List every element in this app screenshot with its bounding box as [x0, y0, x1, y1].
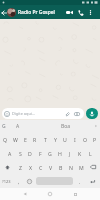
staticText: M — [79, 164, 84, 171]
staticText: F — [39, 150, 42, 157]
button[interactable]: , — [13, 174, 24, 188]
staticText: W — [13, 136, 18, 143]
button[interactable]: V — [46, 160, 56, 174]
button[interactable]: Back — [20, 189, 30, 199]
button[interactable]: X — [26, 160, 36, 174]
button[interactable]: Back — [0, 9, 7, 16]
button[interactable]: N — [66, 160, 76, 174]
staticText: B — [59, 164, 63, 171]
staticText: Q — [3, 136, 8, 143]
button[interactable]: . — [74, 174, 85, 188]
staticText: Digite aqui... — [12, 111, 35, 116]
button[interactable]: Voice message — [86, 108, 98, 119]
button[interactable]: Boa — [54, 120, 78, 132]
staticText: H — [58, 150, 62, 157]
other: Emoji — [4, 111, 10, 117]
staticText: I — [74, 136, 76, 143]
button[interactable]: E — [20, 132, 30, 146]
button[interactable]: L — [85, 146, 95, 160]
button[interactable]: More options — [86, 8, 95, 17]
staticText: O — [83, 136, 88, 143]
button[interactable]: Google — [0, 120, 7, 132]
button[interactable]: Y — [50, 132, 60, 146]
other: Camera — [74, 111, 80, 117]
button[interactable]: Enter — [85, 174, 100, 188]
staticText: S — [19, 150, 22, 157]
staticText: N — [69, 164, 73, 171]
other: Emoji — [27, 179, 32, 184]
staticText: A — [8, 150, 12, 157]
button[interactable]: Video call — [64, 7, 75, 18]
staticText: G — [48, 150, 52, 157]
button[interactable]: G — [45, 146, 55, 160]
other: Enter — [90, 179, 95, 184]
button[interactable]: A — [7, 120, 29, 132]
staticText: P — [93, 136, 97, 143]
staticText: Y — [54, 136, 57, 143]
staticText: K — [78, 150, 82, 157]
button[interactable]: C — [36, 160, 46, 174]
button[interactable]: I — [70, 132, 80, 146]
staticText: T — [44, 136, 47, 143]
staticText: J — [69, 150, 71, 157]
other: Attach — [64, 111, 70, 117]
staticText: ?123 — [2, 179, 11, 184]
staticText: E — [24, 136, 27, 143]
staticText: G — [2, 123, 6, 130]
staticText: C — [39, 164, 43, 171]
staticText: V — [49, 164, 53, 171]
staticText: , — [18, 178, 20, 185]
button[interactable]: W — [10, 132, 20, 146]
button[interactable]: S — [15, 146, 25, 160]
staticText: A — [16, 123, 20, 130]
button[interactable]: P — [90, 132, 100, 146]
staticText: Boa — [61, 123, 71, 130]
button[interactable] — [86, 160, 100, 174]
staticText: Radio Pr Gospel — [18, 9, 55, 16]
button[interactable]: Home — [45, 189, 55, 199]
button[interactable]: B — [56, 160, 66, 174]
button[interactable]: Emoji — [24, 174, 35, 188]
button[interactable]: D — [25, 146, 35, 160]
staticText: R — [33, 136, 37, 143]
button[interactable]: F — [35, 146, 45, 160]
button[interactable]: M — [76, 160, 86, 174]
button[interactable]: Q — [0, 132, 10, 146]
button[interactable]: T — [40, 132, 50, 146]
button[interactable]: O — [80, 132, 90, 146]
staticText: L — [89, 150, 92, 157]
staticText: Z — [19, 164, 22, 171]
staticText: U — [63, 136, 67, 143]
button[interactable]: K — [75, 146, 85, 160]
staticText: . — [79, 178, 81, 185]
button[interactable]: Call — [75, 7, 86, 18]
button[interactable]: Z — [15, 160, 26, 174]
button[interactable]: U — [60, 132, 70, 146]
button[interactable]: H — [55, 146, 65, 160]
button[interactable]: R — [30, 132, 40, 146]
staticText: D — [28, 150, 32, 157]
button[interactable]: More suggestions — [91, 120, 100, 132]
button[interactable]: A — [5, 146, 15, 160]
button[interactable] — [0, 160, 15, 174]
button[interactable]: J — [65, 146, 75, 160]
staticText: X — [29, 164, 33, 171]
button[interactable]: Recent apps — [70, 189, 80, 199]
button[interactable]: Emoji — [2, 108, 84, 119]
button[interactable]: ?123 — [0, 174, 13, 188]
